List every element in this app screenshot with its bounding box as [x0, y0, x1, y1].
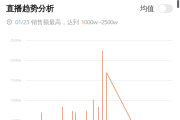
staticText: 1500w [10, 77, 21, 83]
button[interactable]: 均值 [140, 4, 173, 13]
staticText: 2500w [10, 37, 21, 43]
staticText: 均值 [140, 4, 154, 13]
staticText: 500w [12, 117, 21, 120]
staticText: 2000w [10, 57, 21, 63]
staticText: 直播趋势分析 [6, 3, 54, 14]
staticText: 01/23 销售额最高，达到 1000w~2500w [15, 18, 118, 26]
staticText: 1000w [10, 97, 21, 103]
